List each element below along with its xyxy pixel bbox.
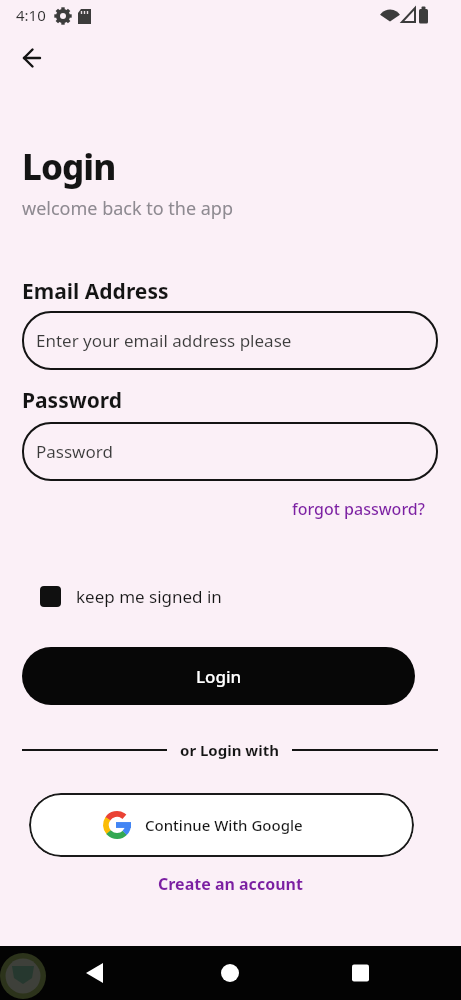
button[interactable]: [18, 44, 46, 72]
button[interactable]: Enter your email address please: [22, 311, 438, 370]
button[interactable]: Create an account: [158, 873, 303, 895]
button[interactable]: Continue With Google: [29, 793, 414, 857]
staticText: Enter your email address please: [36, 329, 292, 352]
staticText: welcome back to the app: [22, 196, 233, 221]
staticText: Login: [22, 143, 116, 191]
button[interactable]: forgot password?: [292, 498, 425, 520]
button[interactable]: keep me signed in: [40, 585, 222, 608]
button[interactable]: [153, 946, 307, 1000]
button[interactable]: [0, 946, 153, 1000]
staticText: Continue With Google: [145, 815, 303, 835]
staticText: Login: [196, 665, 242, 688]
staticText: 4:10: [16, 5, 46, 25]
button[interactable]: [307, 946, 461, 1000]
staticText: Email Address: [22, 277, 169, 306]
staticText: keep me signed in: [76, 585, 222, 608]
button[interactable]: Login: [22, 647, 415, 705]
button[interactable]: Password: [22, 422, 438, 481]
staticText: or Login with: [180, 740, 279, 760]
staticText: Password: [22, 386, 123, 415]
staticText: Password: [36, 440, 113, 463]
